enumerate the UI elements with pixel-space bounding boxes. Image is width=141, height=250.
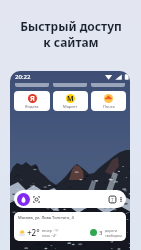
staticText: вечер −1°	[42, 228, 59, 233]
other: Вкладки	[108, 195, 117, 204]
staticText: Маркет	[63, 104, 78, 109]
other: Меню	[119, 195, 123, 204]
staticText: Яндекс	[25, 104, 39, 109]
staticText: дороги	[105, 228, 118, 233]
staticText: ночь −4°	[42, 233, 57, 238]
staticText: Москва, ул. Льва Толстого, 4	[18, 215, 74, 220]
staticText: 3	[99, 229, 103, 237]
button[interactable]: Москва, ул. Льва Толстого, 4	[14, 212, 126, 241]
other: Алиса	[17, 193, 30, 206]
button[interactable]: Алиса	[14, 190, 126, 208]
staticText: свободны	[105, 233, 122, 238]
button[interactable]: M	[53, 91, 88, 111]
staticText: Почта	[103, 104, 115, 109]
staticText: 7	[111, 197, 114, 203]
button[interactable]: Я	[14, 91, 50, 111]
staticText: Быстрый доступ	[20, 18, 122, 34]
button[interactable]: Почта	[91, 91, 126, 111]
staticText: M	[67, 94, 74, 103]
staticText: 20:22	[15, 73, 31, 81]
other: Поиск по фото	[32, 195, 41, 204]
staticText: Я	[30, 94, 35, 103]
staticText: к сайтам	[43, 34, 99, 50]
staticText: +2°	[27, 227, 40, 238]
